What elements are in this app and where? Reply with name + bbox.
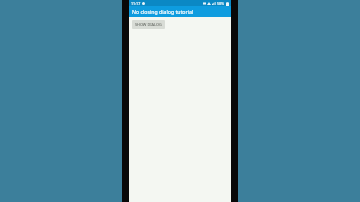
- staticText: 11:17: [131, 1, 141, 6]
- staticText: 58%: [217, 1, 225, 6]
- staticText: No closing dialog tutorial: [132, 8, 194, 15]
- staticText: SHOW DIALOG: [135, 22, 162, 27]
- button[interactable]: SHOW DIALOG: [132, 20, 165, 29]
